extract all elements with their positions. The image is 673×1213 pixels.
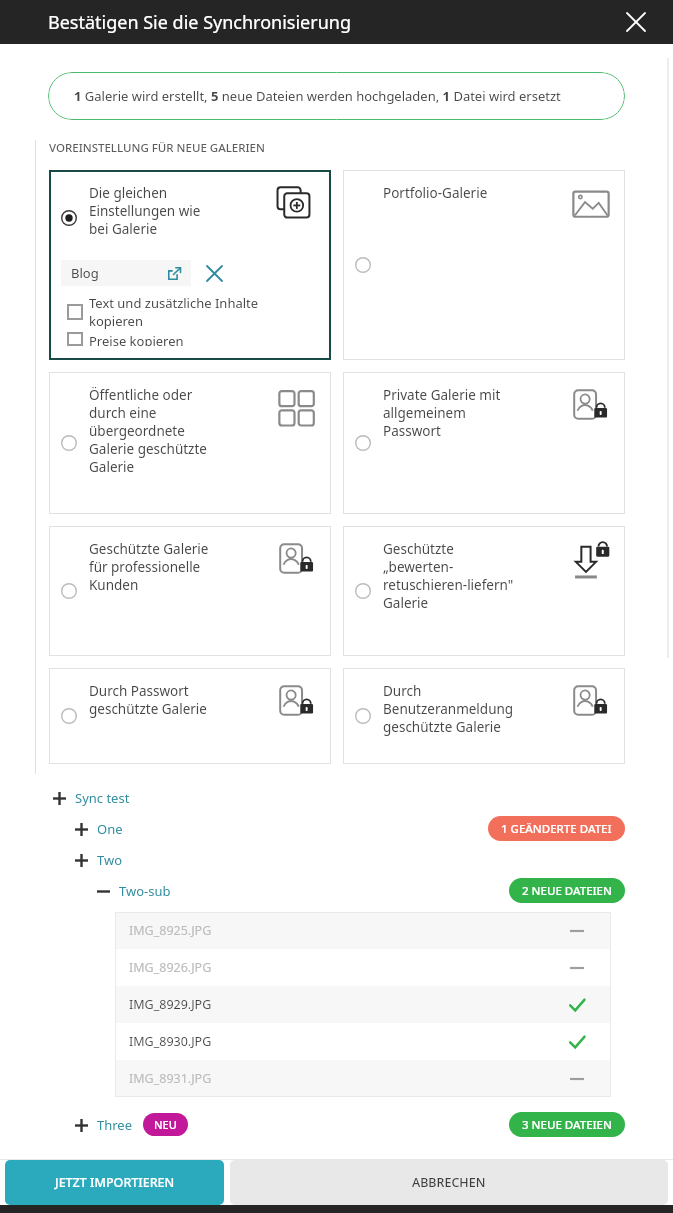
staticText: Geschützte Galerie — [89, 540, 209, 558]
button[interactable]: Durch Passwort — [49, 668, 331, 764]
button[interactable]: IMG_8931.JPG — [115, 1060, 611, 1097]
staticText: VOREINSTELLUNG FÜR NEUE GALERIEN — [49, 140, 265, 156]
staticText: Durch Passwort — [89, 682, 189, 700]
staticText: 3 NEUE DATEIEN — [522, 1117, 612, 1133]
button[interactable]: IMG_8930.JPG — [115, 1023, 611, 1060]
staticText: Kunden — [89, 576, 139, 594]
staticText: IMG_8925.JPG — [129, 922, 212, 939]
staticText: IMG_8931.JPG — [129, 1070, 212, 1087]
button[interactable]: Schließen — [621, 7, 651, 37]
button[interactable]: Öffentliche oder — [49, 372, 331, 514]
staticText: Portfolio-Galerie — [383, 184, 488, 202]
button[interactable]: IMG_8925.JPG — [115, 912, 611, 949]
button[interactable]: Preise kopieren — [61, 332, 319, 346]
staticText: ABBRECHEN — [412, 1174, 486, 1191]
staticText: Two — [97, 851, 123, 869]
staticText: Die gleichen — [89, 184, 168, 202]
staticText: Sync test — [75, 789, 130, 807]
button[interactable]: IMG_8929.JPG — [115, 986, 611, 1023]
button[interactable]: IMG_8926.JPG — [115, 949, 611, 986]
button[interactable]: Die gleichen — [49, 170, 331, 360]
staticText: allgemeinem — [383, 404, 466, 422]
button[interactable]: Two-sub — [49, 875, 625, 906]
staticText: Galerie — [383, 594, 429, 612]
staticText: durch eine — [89, 404, 157, 422]
staticText: Bestätigen Sie die Synchronisierung — [48, 10, 351, 35]
staticText: Galerie — [89, 458, 135, 476]
button[interactable]: Text und zusätzliche Inhalte — [61, 294, 319, 330]
button[interactable]: Entfernen — [203, 262, 225, 284]
button[interactable]: Durch — [343, 668, 625, 764]
staticText: Geschützte — [383, 540, 454, 558]
button[interactable]: Blog — [61, 260, 191, 286]
button[interactable]: JETZT IMPORTIEREN — [5, 1160, 224, 1205]
staticText: 2 NEUE DATEIEN — [522, 883, 612, 899]
staticText: Text und zusätzliche Inhalte — [89, 294, 259, 312]
staticText: JETZT IMPORTIEREN — [55, 1174, 175, 1191]
button[interactable]: Private Galerie mit — [343, 372, 625, 514]
staticText: IMG_8926.JPG — [129, 959, 212, 976]
staticText: Private Galerie mit — [383, 386, 501, 404]
staticText: Öffentliche oder — [89, 386, 193, 404]
button[interactable]: Three — [49, 1109, 625, 1140]
button[interactable]: Portfolio-Galerie — [343, 170, 625, 360]
staticText: „bewerten- — [383, 558, 454, 576]
staticText: retuschieren-liefern" — [383, 576, 514, 594]
staticText: IMG_8930.JPG — [129, 1033, 212, 1050]
staticText: Einstellungen wie — [89, 202, 201, 220]
staticText: Benutzeranmeldung — [383, 700, 514, 718]
button[interactable]: Sync test — [49, 782, 625, 813]
staticText: Galerie geschützte — [89, 440, 207, 458]
staticText: für professionelle — [89, 558, 201, 576]
button[interactable]: ABBRECHEN — [230, 1160, 668, 1205]
staticText: geschützte Galerie — [383, 718, 501, 736]
staticText: 1 Galerie wird erstellt, 5 neue Dateien … — [74, 87, 561, 105]
staticText: bei Galerie — [89, 220, 158, 238]
staticText: geschützte Galerie — [89, 700, 207, 718]
staticText: One — [97, 820, 123, 838]
button[interactable]: Geschützte Galerie — [49, 526, 331, 656]
button[interactable]: Geschützte — [343, 526, 625, 656]
staticText: Two-sub — [119, 882, 171, 900]
staticText: 1 GEÄNDERTE DATEI — [501, 821, 612, 837]
staticText: kopieren — [89, 312, 143, 330]
staticText: IMG_8929.JPG — [129, 996, 212, 1013]
staticText: übergeordnete — [89, 422, 185, 440]
staticText: Passwort — [383, 422, 441, 440]
button[interactable]: One — [49, 813, 625, 844]
staticText: NEU — [154, 1117, 177, 1132]
staticText: Durch — [383, 682, 422, 700]
staticText: Three — [97, 1116, 133, 1134]
button[interactable]: Two — [49, 844, 625, 875]
staticText: Blog — [71, 264, 99, 282]
staticText: Preise kopieren — [89, 332, 184, 346]
